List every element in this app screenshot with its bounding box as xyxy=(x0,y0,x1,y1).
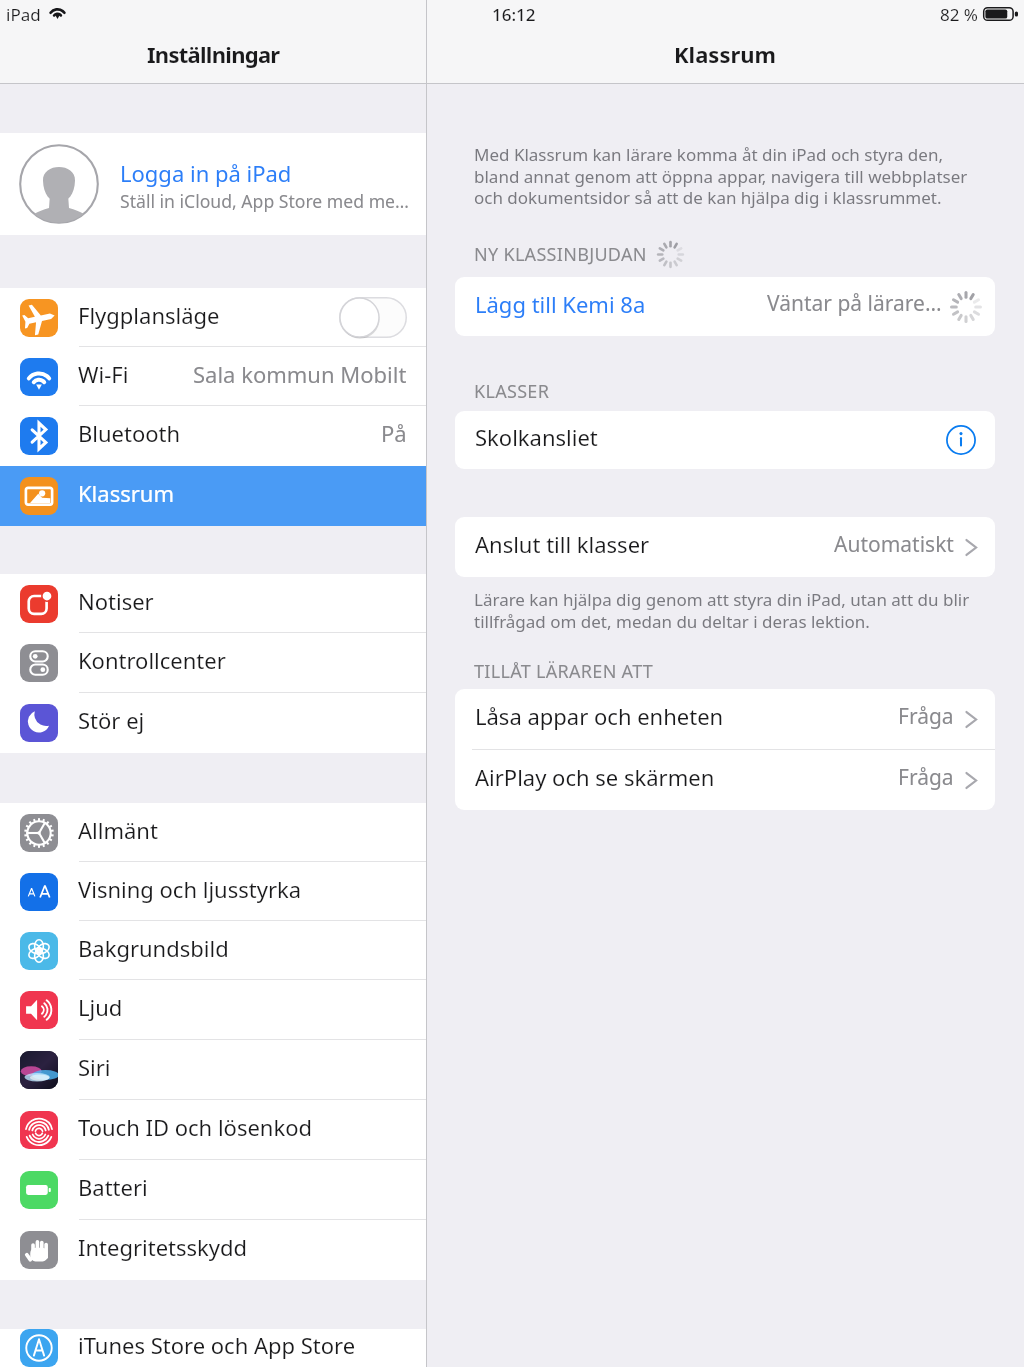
staticText: Logga in på iPad xyxy=(120,158,292,188)
button[interactable]: Skolkansliet xyxy=(475,411,977,469)
staticText: KLASSER xyxy=(474,379,550,404)
button[interactable]: Logga in på iPad xyxy=(0,133,426,235)
staticText: Klassrum xyxy=(78,478,174,508)
staticText: Automatiskt xyxy=(834,530,954,559)
staticText: Lärare kan hjälpa dig genom att styra di… xyxy=(474,588,976,633)
button[interactable]: Integritetsskydd xyxy=(0,1220,426,1280)
staticText: Ställ in iCloud, App Store med me… xyxy=(120,189,409,213)
staticText: Wi-Fi xyxy=(78,359,129,389)
staticText: Inställningar xyxy=(147,39,280,69)
button[interactable]: Notiser xyxy=(0,574,426,633)
button[interactable]: Låsa appar och enheten xyxy=(475,689,980,749)
staticText: Kontrollcenter xyxy=(78,645,226,675)
staticText: Bakgrundsbild xyxy=(78,933,229,963)
button[interactable]: Wi-Fi xyxy=(0,347,426,406)
staticText: iTunes Store och App Store xyxy=(78,1330,356,1360)
staticText: Siri xyxy=(78,1052,111,1082)
staticText: Klassrum xyxy=(674,39,777,69)
button[interactable]: Klassrum xyxy=(0,466,426,526)
staticText: Fråga xyxy=(898,702,954,731)
staticText: Ljud xyxy=(78,992,123,1022)
button[interactable]: iTunes Store och App Store xyxy=(0,1329,426,1367)
staticText: AirPlay och se skärmen xyxy=(475,762,715,792)
staticText: Sala kommun Mobilt xyxy=(193,359,407,389)
staticText: TILLÅT LÄRAREN ATT xyxy=(474,659,654,684)
button[interactable]: Ljud xyxy=(0,980,426,1040)
staticText: Lägg till Kemi 8a xyxy=(475,289,646,319)
staticText: Stör ej xyxy=(78,705,145,735)
staticText: Visning och ljusstyrka xyxy=(78,874,302,904)
button[interactable]: Bakgrundsbild xyxy=(0,921,426,980)
staticText: Anslut till klasser xyxy=(475,529,650,559)
button[interactable]: Info om Skolkansliet xyxy=(945,424,977,456)
staticText: Allmänt xyxy=(78,815,158,845)
button[interactable]: Bluetooth xyxy=(0,406,426,466)
button[interactable]: Anslut till klasser xyxy=(475,517,980,577)
staticText: Väntar på lärare… xyxy=(767,289,942,318)
button[interactable]: Kontrollcenter xyxy=(0,633,426,693)
button[interactable]: Flygplansläge växla xyxy=(339,297,407,338)
staticText: Med Klassrum kan lärare komma åt din iPa… xyxy=(474,143,976,209)
button[interactable]: Stör ej xyxy=(0,693,426,753)
staticText: Skolkansliet xyxy=(475,422,598,452)
staticText: Notiser xyxy=(78,586,154,616)
button[interactable]: Siri xyxy=(0,1040,426,1100)
button[interactable]: Flygplansläge xyxy=(0,288,426,347)
staticText: Låsa appar och enheten xyxy=(475,701,724,731)
staticText: Integritetsskydd xyxy=(78,1232,248,1262)
button[interactable]: Batteri xyxy=(0,1160,426,1220)
button[interactable]: Visning och ljusstyrka xyxy=(0,862,426,921)
staticText: iPad xyxy=(6,3,41,26)
staticText: Flygplansläge xyxy=(78,300,220,330)
button[interactable]: Touch ID och lösenkod xyxy=(0,1100,426,1160)
button[interactable]: AirPlay och se skärmen xyxy=(475,750,980,810)
staticText: NY KLASSINBJUDAN xyxy=(474,242,647,267)
staticText: På xyxy=(381,418,407,448)
button[interactable]: Allmänt xyxy=(0,803,426,862)
staticText: 16:12 xyxy=(492,3,536,26)
button[interactable]: Lägg till Kemi 8a xyxy=(475,277,983,336)
staticText: Touch ID och lösenkod xyxy=(78,1112,313,1142)
staticText: Batteri xyxy=(78,1172,148,1202)
staticText: Bluetooth xyxy=(78,418,181,448)
staticText: Fråga xyxy=(898,763,954,792)
staticText: 82 % xyxy=(940,3,978,26)
